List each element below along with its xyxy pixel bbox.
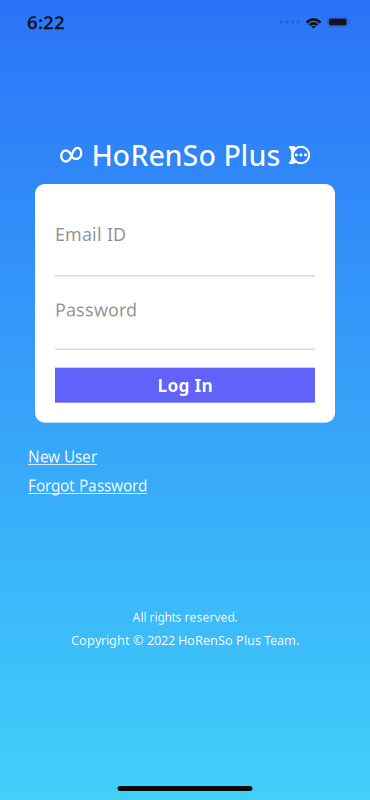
- staticText: New User: [28, 446, 97, 467]
- staticText: 6:22: [27, 10, 65, 34]
- staticText: Password: [55, 297, 137, 322]
- staticText: All rights reserved.: [132, 609, 237, 625]
- button[interactable]: Forgot Password: [28, 476, 147, 496]
- staticText: Copyright © 2022 HoRenSo Plus Team.: [71, 631, 299, 649]
- staticText: Email ID: [55, 222, 126, 246]
- staticText: Forgot Password: [28, 475, 147, 496]
- button[interactable]: New User: [28, 447, 97, 467]
- staticText: Log In: [157, 374, 212, 397]
- staticText: HoRenSo Plus: [91, 135, 280, 174]
- button[interactable]: Log In: [55, 368, 315, 403]
